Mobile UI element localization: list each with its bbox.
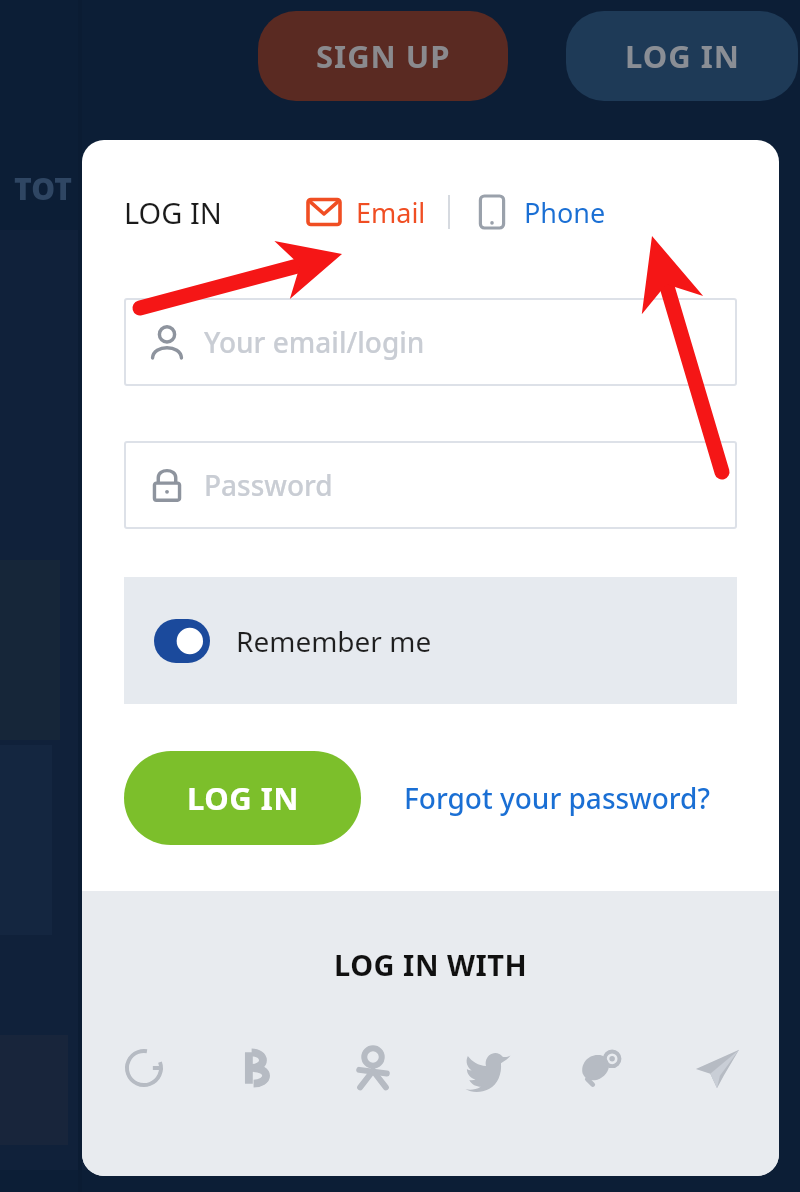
button[interactable]: Google <box>108 1032 180 1104</box>
button[interactable]: VK <box>223 1032 295 1104</box>
button[interactable]: Odnoklassniki <box>337 1032 409 1104</box>
button[interactable]: LOG IN <box>124 751 361 845</box>
button[interactable]: Telegram <box>681 1032 753 1104</box>
button[interactable]: Phone <box>468 188 610 236</box>
button[interactable]: Forgot your password? <box>404 769 710 827</box>
staticText: Password <box>204 466 333 504</box>
button[interactable]: LOG IN <box>566 11 798 101</box>
staticText: Remember me <box>236 622 432 660</box>
staticText: Email <box>356 194 426 231</box>
staticText: TOT <box>14 168 72 209</box>
button[interactable]: Steam <box>566 1032 638 1104</box>
button[interactable]: Password <box>124 441 737 529</box>
staticText: LOG IN <box>625 35 740 77</box>
staticText: Phone <box>524 194 606 231</box>
button[interactable]: Email <box>300 188 430 236</box>
staticText: SIGN UP <box>316 35 451 77</box>
button[interactable]: Your email/login <box>124 298 737 386</box>
staticText: LOG IN WITH <box>334 945 528 984</box>
staticText: LOG IN <box>187 777 299 819</box>
button[interactable]: Remember me <box>124 577 737 704</box>
button[interactable]: Twitter <box>452 1032 524 1104</box>
staticText: Your email/login <box>204 323 425 361</box>
staticText: LOG IN <box>124 193 222 232</box>
staticText: Forgot your password? <box>404 779 710 817</box>
button[interactable]: SIGN UP <box>258 11 508 101</box>
